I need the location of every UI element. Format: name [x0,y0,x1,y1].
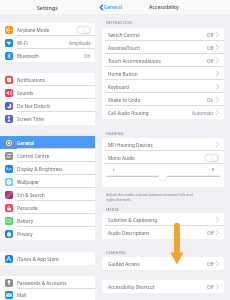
button[interactable]: Screen Time [0,112,95,125]
button[interactable]: Toggle [76,26,91,34]
staticText: Do Not Disturb [17,103,51,109]
button[interactable]: Subtitles & Captioning [102,213,224,226]
staticText: Accessibility Shortcut [108,284,155,290]
staticText: On [207,97,214,103]
button[interactable]: Battery [0,214,95,227]
button[interactable]: Keyboard [102,80,224,93]
button[interactable]: Mono Audio [102,151,224,164]
staticText: Automatic [192,110,214,116]
staticText: Switch Control [108,32,140,38]
staticText: Settings [37,4,58,11]
staticText: Home Button [108,71,138,77]
button[interactable]: Control Centre [0,149,95,162]
staticText: On [84,53,91,59]
staticText: HEARING [106,131,124,136]
button[interactable]: Siri & Search [0,188,95,201]
button[interactable]: General [0,136,95,149]
button[interactable]: Toggle [204,154,219,162]
staticText: Shake to Undo [108,97,141,103]
button[interactable]: Mail [0,289,95,300]
staticText: Touch Accommodations [108,58,161,64]
staticText: Off [207,230,214,236]
staticText: Privacy [17,231,33,237]
staticText: Audio Descriptions [108,230,150,236]
staticText: Screen Time [17,116,44,122]
button[interactable]: Home Button [102,67,224,80]
staticText: Wi-Fi [17,40,28,46]
button[interactable]: Passcode [0,201,95,214]
button[interactable]: Call Audio Routing [102,106,224,119]
staticText: Passcode [17,205,38,211]
staticText: General [17,140,35,146]
button[interactable]: Touch Accommodations [102,54,224,67]
button[interactable]: AssistiveTouch [102,41,224,54]
staticText: Call Audio Routing [108,110,149,116]
staticText: R [212,167,215,172]
staticText: Sounds [17,90,34,96]
staticText: Mail [17,292,27,298]
button[interactable]: MFi Hearing Devices [102,138,224,151]
staticText: Guided Access [108,261,140,267]
staticText: INTERACTION [106,20,133,25]
staticText: Control Centre [17,153,50,159]
staticText: Bluetooth [17,53,39,59]
staticText: Adjust the audio volume balance between … [106,192,193,202]
staticText: Siri & Search [17,192,45,198]
staticText: Off [207,284,214,290]
staticText: L [113,167,115,172]
staticText: Mono Audio [108,155,135,161]
button[interactable]: Accessibility Shortcut [102,280,224,293]
staticText: Subtitles & Captioning [108,217,158,223]
button[interactable]: General [95,3,127,12]
staticText: Accessibility [149,4,179,11]
staticText: Airplane Mode [17,27,50,33]
button[interactable]: Do Not Disturb [0,99,95,112]
button[interactable]: Privacy [0,227,95,240]
staticText: Wallpaper [17,179,40,185]
button[interactable]: Wi-Fi [0,36,95,49]
button[interactable]: Airplane Mode [0,23,95,36]
staticText: Amplitude [69,40,91,46]
staticText: General [104,4,123,11]
staticText: Notifications [17,77,45,83]
button[interactable]: Sounds [0,86,95,99]
button[interactable]: Guided Access [102,257,224,270]
staticText: LEARNING [106,250,126,255]
staticText: Off [207,58,214,64]
staticText: AssistiveTouch [108,45,141,51]
button[interactable]: Audio Descriptions [102,226,224,239]
staticText: iTunes & App Store [17,256,59,262]
button[interactable]: Wallpaper [0,175,95,188]
staticText: Keyboard [108,84,129,90]
button[interactable]: Bluetooth [0,49,95,62]
staticText: Passwords & Accounts [17,280,67,286]
staticText: Display & Brightness [17,166,63,172]
button[interactable]: Notifications [0,73,95,86]
button[interactable]: Passwords & Accounts [0,276,95,289]
button[interactable]: iTunes & App Store [0,252,95,265]
button[interactable]: Switch Control [102,28,224,41]
staticText: Off [207,32,214,38]
staticText: MFi Hearing Devices [108,142,153,148]
staticText: Battery [17,218,34,224]
staticText: MEDIA [106,207,119,212]
staticText: Off [207,45,214,51]
button[interactable]: Display & Brightness [0,162,95,175]
button[interactable]: Shake to Undo [102,93,224,106]
staticText: Off [207,261,214,267]
